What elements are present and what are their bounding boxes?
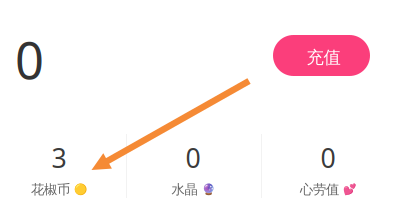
button[interactable]: 0 <box>134 140 252 198</box>
staticText: 0 <box>15 26 44 93</box>
staticText: 3 <box>51 140 66 175</box>
button[interactable]: 充值 <box>273 35 370 76</box>
button[interactable]: 3 <box>0 140 118 198</box>
staticText: 花椒币 <box>31 181 70 198</box>
staticText: 🟡 <box>74 183 87 196</box>
staticText: 💕 <box>343 183 356 196</box>
staticText: 🔮 <box>201 183 214 196</box>
staticText: 0 <box>320 140 335 175</box>
staticText: 0 <box>185 140 200 175</box>
staticText: 心劳值 <box>300 181 339 198</box>
staticText: 充值 <box>306 47 340 68</box>
staticText: 水晶 <box>171 181 197 198</box>
button[interactable]: 0 <box>269 140 387 198</box>
